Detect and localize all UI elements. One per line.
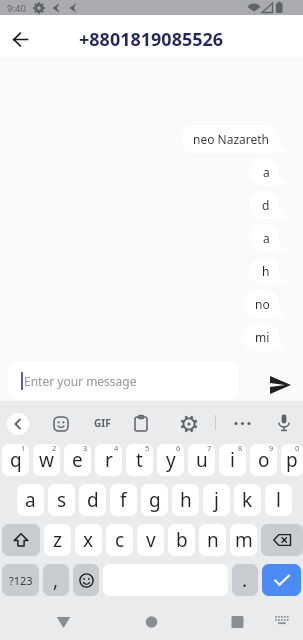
staticText: n bbox=[207, 527, 219, 553]
button[interactable]: t bbox=[126, 444, 153, 476]
staticText: t bbox=[136, 447, 143, 473]
button[interactable] bbox=[2, 524, 40, 556]
button[interactable]: c bbox=[106, 524, 133, 556]
staticText: g bbox=[149, 487, 161, 513]
staticText: e bbox=[72, 447, 83, 473]
button[interactable]: h bbox=[172, 484, 199, 516]
staticText: v bbox=[146, 527, 156, 553]
staticText: m bbox=[235, 527, 253, 553]
button[interactable]: j bbox=[203, 484, 230, 516]
button[interactable]: a bbox=[251, 224, 279, 252]
button[interactable]: d bbox=[79, 484, 106, 516]
button[interactable]: z bbox=[44, 524, 71, 556]
staticText: u bbox=[196, 447, 208, 473]
staticText: neo Nazareth bbox=[193, 131, 270, 147]
button[interactable]: n bbox=[199, 524, 226, 556]
button[interactable]: b bbox=[168, 524, 195, 556]
button[interactable] bbox=[7, 413, 29, 435]
staticText: z bbox=[53, 527, 62, 553]
button[interactable]: d bbox=[250, 191, 279, 219]
button[interactable]: f bbox=[110, 484, 137, 516]
staticText: w bbox=[39, 447, 54, 473]
staticText: k bbox=[242, 487, 253, 513]
button[interactable]: a bbox=[17, 484, 44, 516]
button[interactable] bbox=[262, 564, 301, 596]
staticText: r bbox=[105, 447, 113, 473]
button[interactable]: . bbox=[232, 564, 258, 596]
staticText: 8 bbox=[238, 444, 243, 453]
button[interactable]: o bbox=[250, 444, 277, 476]
staticText: 9:40 bbox=[7, 2, 26, 15]
staticText: i bbox=[230, 447, 235, 473]
button[interactable] bbox=[277, 414, 291, 433]
staticText: 0 bbox=[295, 444, 300, 453]
button[interactable] bbox=[224, 609, 251, 631]
button[interactable]: neo Nazareth bbox=[181, 125, 279, 153]
button[interactable] bbox=[73, 564, 99, 596]
button[interactable]: l bbox=[265, 484, 292, 516]
button[interactable]: , bbox=[43, 564, 69, 596]
button[interactable]: ?123 bbox=[2, 564, 39, 596]
staticText: no bbox=[255, 296, 270, 312]
staticText: 6 bbox=[176, 444, 181, 453]
button[interactable]: m bbox=[230, 524, 257, 556]
staticText: c bbox=[115, 527, 125, 553]
button[interactable]: no bbox=[243, 290, 279, 318]
button[interactable] bbox=[53, 416, 69, 432]
staticText: h bbox=[262, 263, 270, 279]
staticText: 7 bbox=[207, 444, 212, 453]
staticText: Enter your message bbox=[24, 373, 137, 389]
button[interactable]: e bbox=[64, 444, 91, 476]
staticText: 3 bbox=[83, 444, 88, 453]
button[interactable]: y bbox=[157, 444, 184, 476]
staticText: 2 bbox=[52, 444, 57, 453]
button[interactable]: g bbox=[141, 484, 168, 516]
button[interactable]: v bbox=[137, 524, 164, 556]
button[interactable]: u bbox=[188, 444, 215, 476]
staticText: d bbox=[87, 487, 99, 513]
staticText: 1 bbox=[21, 444, 26, 453]
button[interactable]: a bbox=[251, 158, 279, 186]
staticText: a bbox=[25, 487, 36, 513]
button[interactable] bbox=[50, 609, 77, 631]
staticText: o bbox=[258, 447, 270, 473]
staticText: p bbox=[286, 447, 298, 473]
button[interactable]: w bbox=[33, 444, 60, 476]
button[interactable]: h bbox=[250, 257, 279, 285]
staticText: b bbox=[176, 527, 188, 553]
button[interactable] bbox=[138, 609, 165, 631]
staticText: l bbox=[276, 487, 281, 513]
button[interactable] bbox=[134, 415, 148, 432]
button[interactable]: r bbox=[95, 444, 122, 476]
button[interactable]: k bbox=[234, 484, 261, 516]
staticText: a bbox=[263, 164, 270, 180]
staticText: . bbox=[242, 567, 248, 593]
staticText: j bbox=[214, 487, 219, 513]
staticText: y bbox=[166, 447, 176, 473]
button[interactable]: s bbox=[48, 484, 75, 516]
staticText: ?123 bbox=[9, 573, 33, 588]
button[interactable]: q bbox=[2, 444, 29, 476]
staticText: x bbox=[83, 527, 94, 553]
button[interactable] bbox=[4, 23, 36, 55]
staticText: +8801819085526 bbox=[79, 27, 224, 52]
staticText: h bbox=[180, 487, 192, 513]
button[interactable]: i bbox=[219, 444, 246, 476]
button[interactable] bbox=[261, 524, 303, 556]
button[interactable]: p bbox=[281, 444, 303, 476]
button[interactable]: mi bbox=[243, 323, 279, 351]
staticText: , bbox=[53, 567, 59, 593]
button[interactable]: x bbox=[75, 524, 102, 556]
staticText: a bbox=[263, 230, 270, 246]
staticText: 5 bbox=[145, 444, 150, 453]
staticText: mi bbox=[255, 329, 270, 345]
staticText: 4 bbox=[114, 444, 119, 453]
staticText: q bbox=[10, 447, 22, 473]
button[interactable] bbox=[272, 611, 292, 629]
button[interactable]: GIF bbox=[90, 414, 114, 432]
staticText: GIF bbox=[94, 416, 111, 430]
button[interactable] bbox=[239, 361, 303, 401]
staticText: f bbox=[120, 487, 127, 513]
button[interactable]: Enter your message bbox=[8, 362, 239, 400]
